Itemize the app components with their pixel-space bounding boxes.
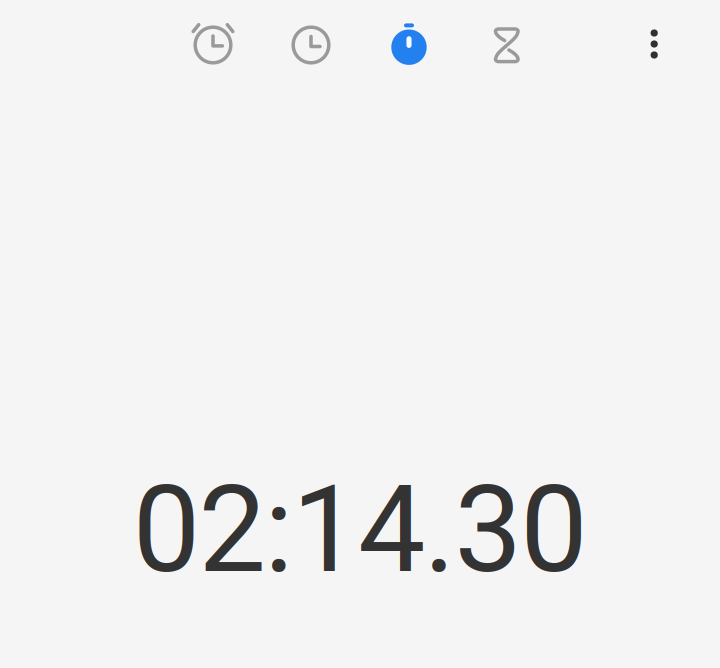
- button[interactable]: More options: [612, 2, 696, 86]
- button[interactable]: Timer: [465, 3, 549, 87]
- button[interactable]: Alarm: [171, 3, 255, 87]
- staticText: 02:14.30: [133, 460, 587, 600]
- button[interactable]: Clock: [269, 3, 353, 87]
- button[interactable]: Stopwatch: [367, 3, 451, 87]
